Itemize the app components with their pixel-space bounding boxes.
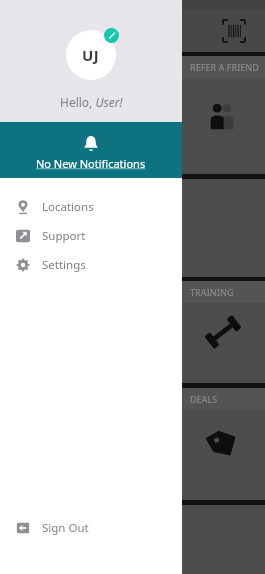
button[interactable]: No New Notifications xyxy=(0,122,182,178)
button[interactable]: UJ xyxy=(62,26,120,84)
staticText: UJ xyxy=(82,45,100,65)
staticText: Sign Out xyxy=(42,520,89,536)
staticText: REFER A FRIEND xyxy=(190,61,259,73)
button[interactable]: Scan barcode xyxy=(223,20,245,42)
staticText: Support xyxy=(42,228,86,244)
button[interactable] xyxy=(0,179,265,277)
staticText: Locations xyxy=(42,199,94,215)
staticText: Settings xyxy=(42,257,86,273)
button[interactable]: REFER A FRIEND xyxy=(0,56,265,174)
button[interactable]: Support xyxy=(0,221,182,250)
staticText: Hello, User! xyxy=(60,94,123,110)
button[interactable]: DEALS xyxy=(0,388,265,500)
staticText: TRAINING xyxy=(190,286,234,298)
button[interactable]: Sign Out xyxy=(0,513,182,542)
button[interactable] xyxy=(0,505,265,574)
button[interactable]: TRAINING xyxy=(0,281,265,383)
staticText: DEALS xyxy=(190,393,218,405)
other: Edit profile xyxy=(104,28,119,43)
staticText: No New Notifications xyxy=(36,156,146,171)
button[interactable]: Locations xyxy=(0,192,182,221)
button[interactable]: Settings xyxy=(0,250,182,279)
